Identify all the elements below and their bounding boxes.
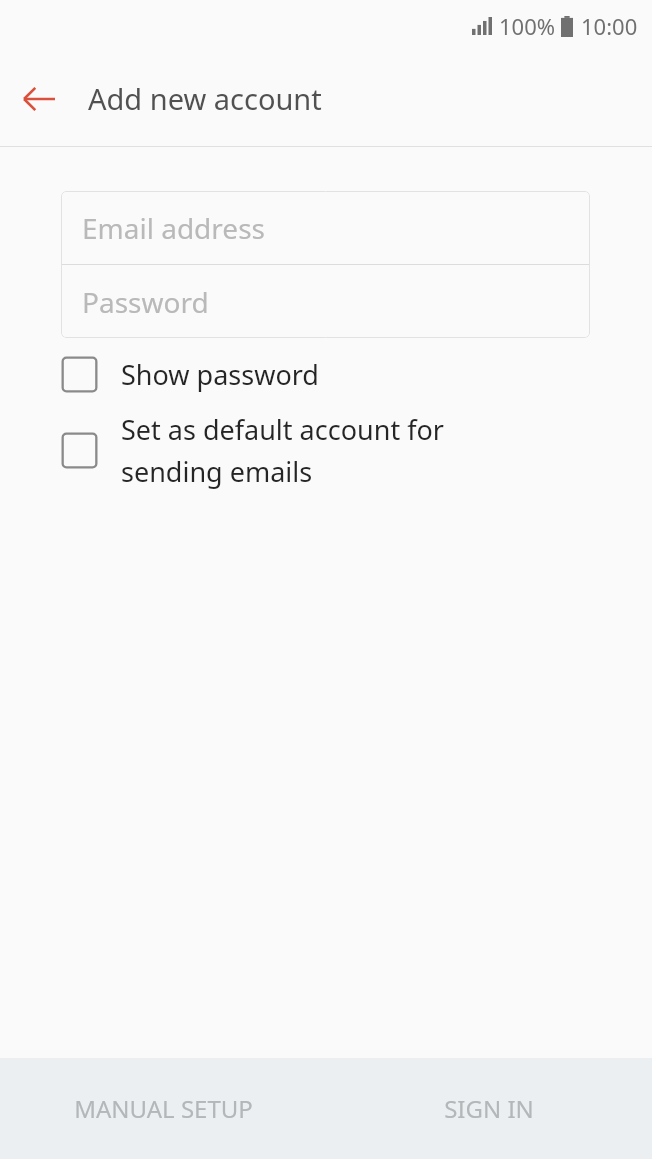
staticText: 100% [499, 11, 556, 41]
button[interactable]: Set as default account for sending email… [0, 411, 652, 490]
button[interactable]: Back [8, 68, 70, 130]
staticText: Add new account [88, 79, 322, 118]
staticText: 10:00 [581, 11, 638, 41]
staticText: Email address [82, 209, 265, 247]
staticText: Set as default account for sending email… [121, 411, 444, 490]
button[interactable]: Password [61, 265, 590, 338]
staticText: SIGN IN [444, 1092, 534, 1125]
button[interactable]: Show password [0, 356, 652, 393]
button[interactable]: Email address [61, 191, 590, 264]
staticText: Show password [121, 356, 319, 393]
button[interactable]: MANUAL SETUP [0, 1058, 326, 1159]
staticText: Password [82, 283, 209, 321]
button[interactable]: SIGN IN [326, 1058, 652, 1159]
staticText: MANUAL SETUP [74, 1092, 253, 1125]
